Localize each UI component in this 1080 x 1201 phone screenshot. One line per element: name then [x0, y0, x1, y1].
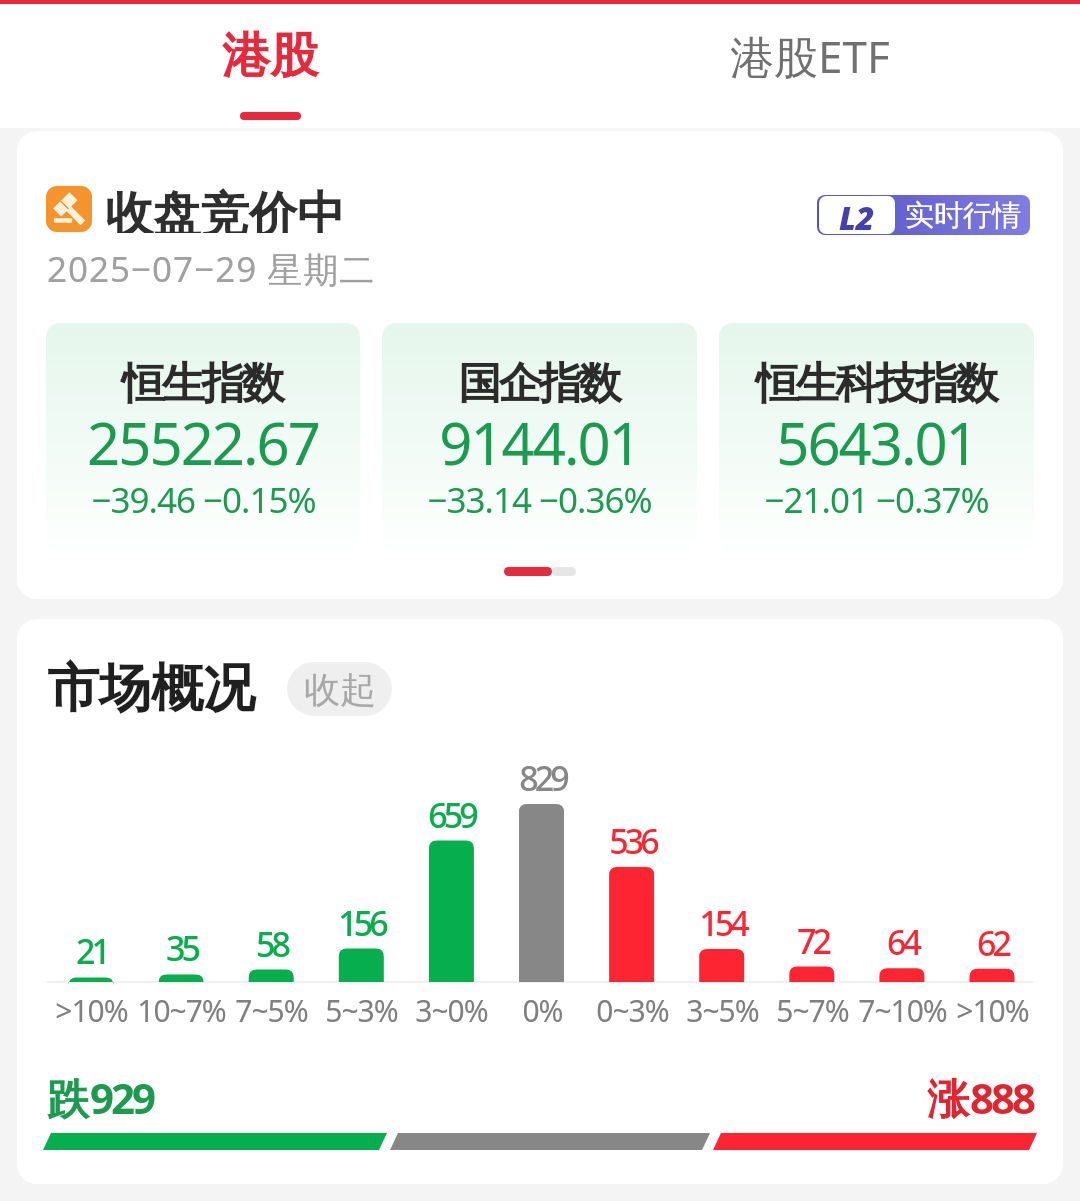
- button[interactable]: L2 实时行情: [817, 195, 1030, 235]
- staticText: 156: [338, 900, 385, 946]
- staticText: 实时行情: [905, 197, 1021, 234]
- staticText: 3~5%: [686, 990, 759, 1031]
- staticText: 154: [699, 900, 746, 946]
- staticText: 市场概况: [47, 656, 255, 722]
- staticText: 国企指数: [460, 357, 620, 411]
- button[interactable]: 港股: [0, 0, 540, 128]
- other: Auction: [46, 186, 92, 232]
- button[interactable]: 恒生科技指数: [719, 323, 1034, 552]
- staticText: 5~3%: [325, 990, 398, 1031]
- staticText: 7~10%: [858, 990, 947, 1031]
- staticText: 10~7%: [137, 990, 226, 1031]
- staticText: 62: [977, 920, 1008, 966]
- staticText: L2: [839, 196, 875, 234]
- button[interactable]: 国企指数: [382, 323, 697, 552]
- button[interactable]: 收起: [287, 662, 392, 716]
- staticText: 跌 929: [47, 1069, 154, 1126]
- staticText: 2025−07−29 星期二: [47, 245, 376, 293]
- staticText: >10%: [956, 990, 1029, 1031]
- staticText: 536: [609, 818, 656, 864]
- staticText: 58: [256, 921, 287, 967]
- staticText: 9144.01: [439, 403, 640, 482]
- staticText: 72: [797, 918, 828, 964]
- staticText: 64: [887, 919, 918, 965]
- staticText: 659: [428, 792, 475, 838]
- staticText: 收盘竞价中: [105, 185, 345, 233]
- staticText: 0~3%: [596, 990, 669, 1031]
- staticText: 3~0%: [415, 990, 488, 1031]
- staticText: 涨 888: [927, 1069, 1034, 1126]
- staticText: 7~5%: [235, 990, 308, 1031]
- staticText: 收起: [304, 667, 376, 712]
- staticText: −39.46 −0.15%: [91, 476, 316, 524]
- staticText: 21: [76, 928, 107, 974]
- staticText: 恒生指数: [123, 357, 283, 411]
- staticText: 5643.01: [776, 403, 977, 482]
- staticText: 0%: [522, 990, 563, 1031]
- staticText: 恒生科技指数: [757, 357, 997, 411]
- staticText: −33.14 −0.36%: [427, 476, 652, 524]
- staticText: 25522.67: [87, 403, 319, 482]
- staticText: −21.01 −0.37%: [764, 476, 989, 524]
- staticText: 829: [519, 755, 566, 801]
- staticText: >10%: [55, 990, 128, 1031]
- staticText: 35: [166, 925, 197, 971]
- staticText: 港股: [222, 26, 318, 86]
- staticText: 港股ETF: [730, 26, 890, 86]
- staticText: 5~7%: [776, 990, 849, 1031]
- button[interactable]: 港股ETF: [540, 0, 1080, 128]
- button[interactable]: 恒生指数: [46, 323, 360, 552]
